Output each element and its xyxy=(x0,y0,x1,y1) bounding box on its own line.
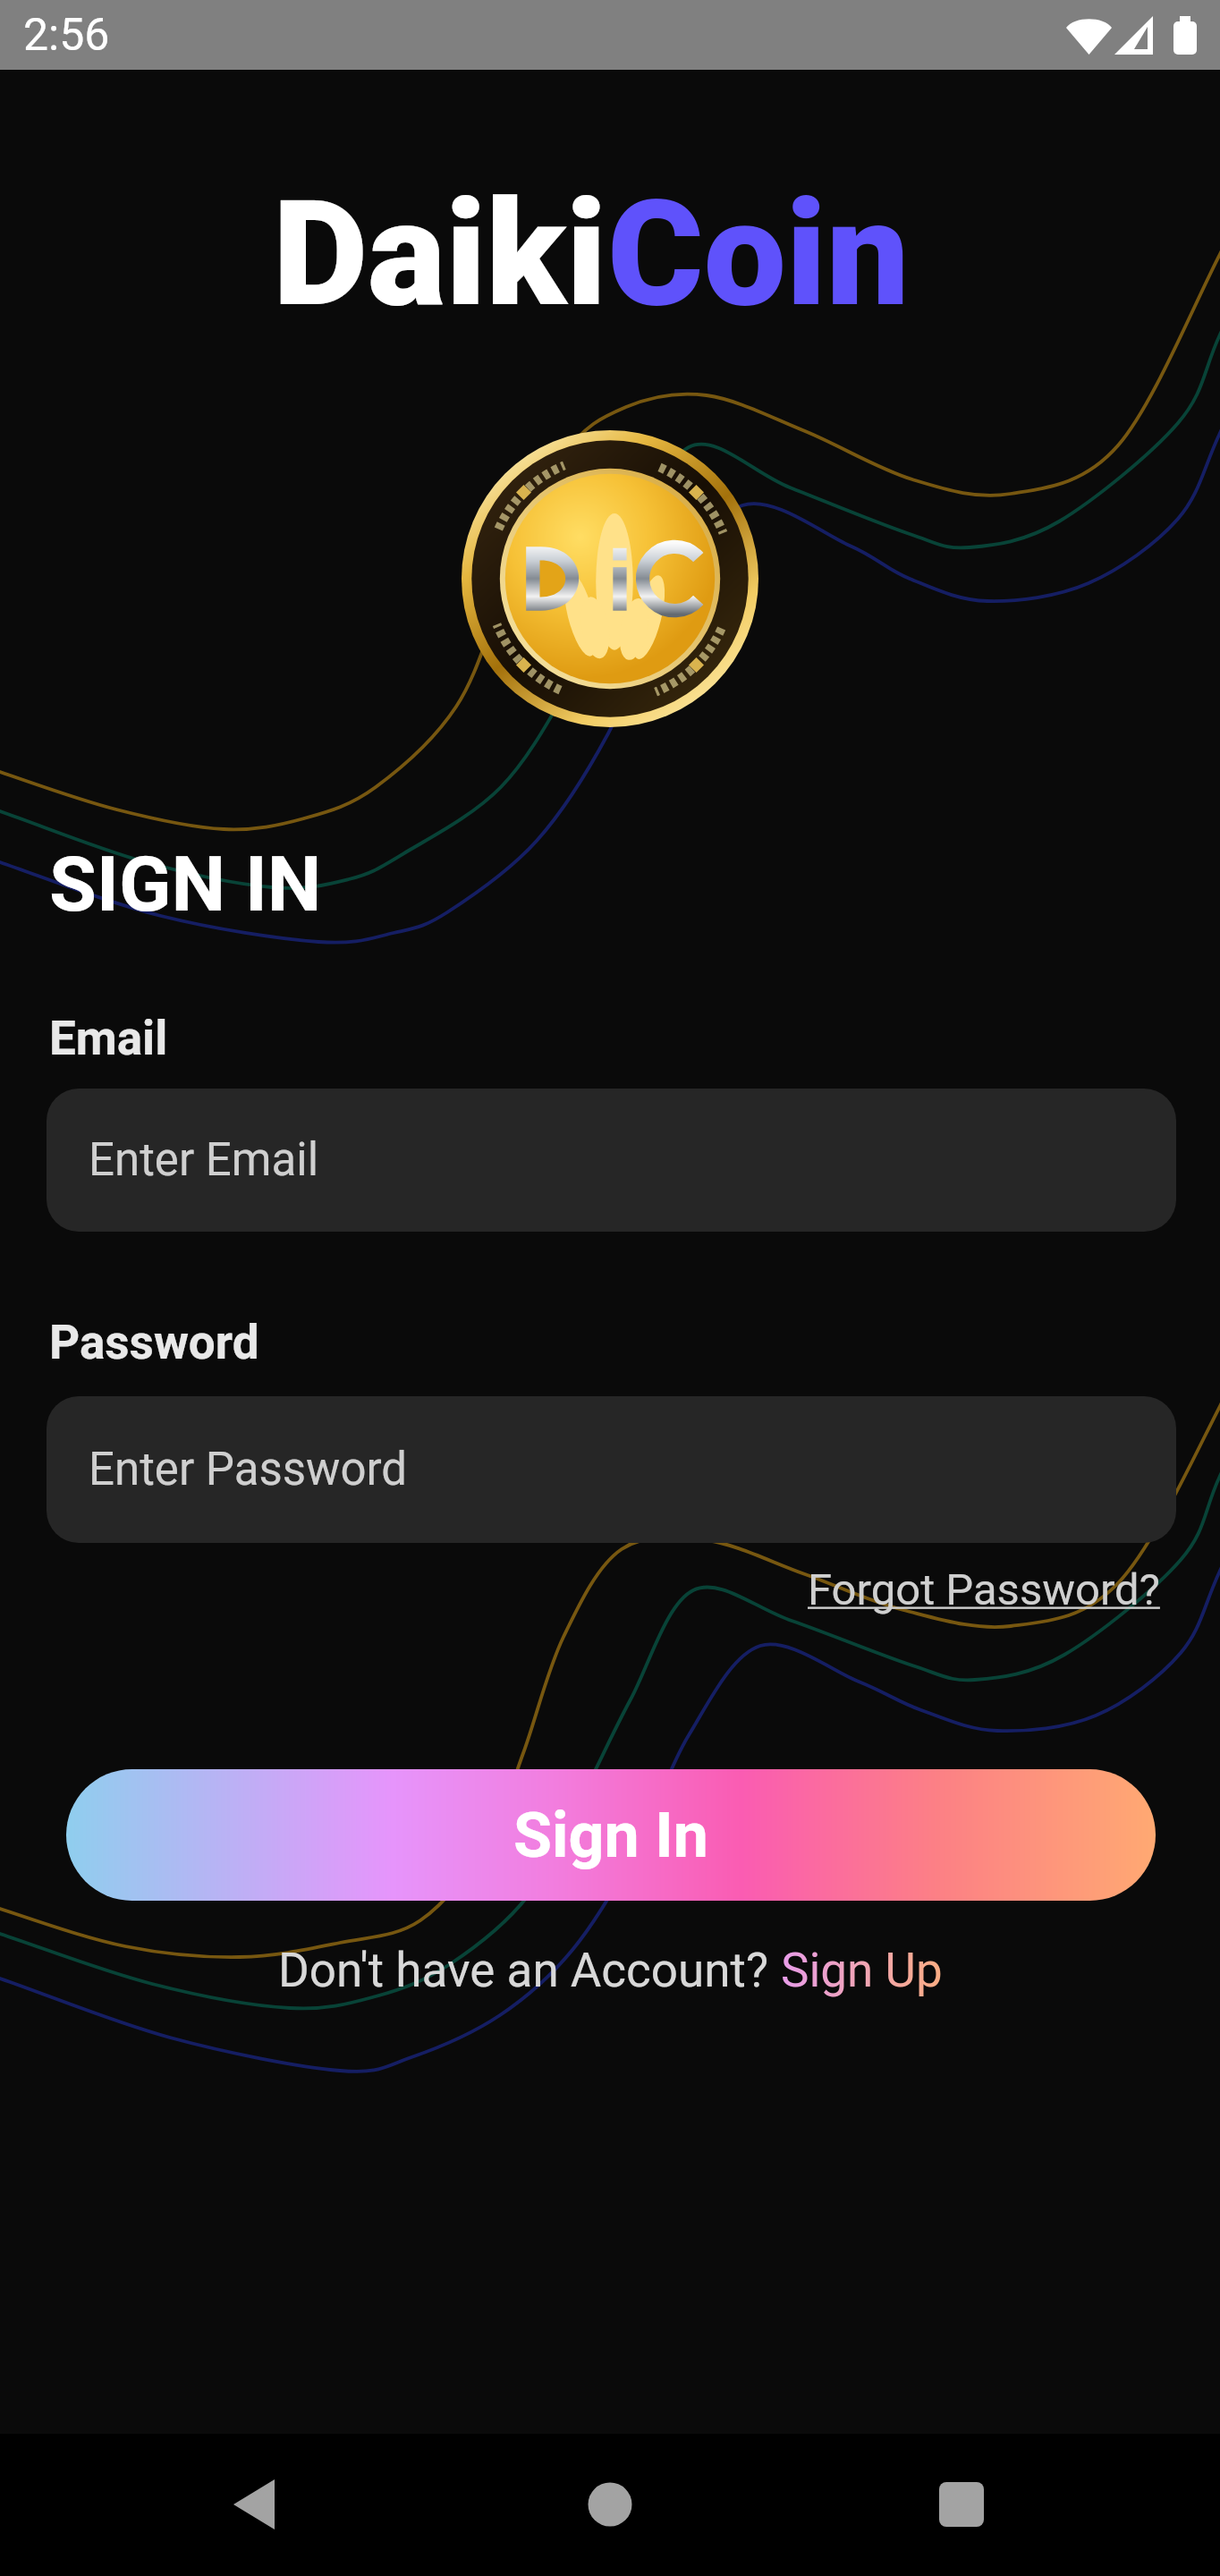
button[interactable]: Sign In xyxy=(66,1769,1156,1901)
staticText: Sign Up xyxy=(781,1943,943,1998)
staticText: Enter Password xyxy=(89,1443,408,1496)
button[interactable]: Back xyxy=(201,2451,309,2558)
staticText: Sign In xyxy=(513,1799,708,1872)
button[interactable]: Forgot Password? xyxy=(808,1564,1160,1615)
staticText: Email xyxy=(49,1011,168,1066)
staticText: Daiki xyxy=(273,168,607,340)
button[interactable]: Enter Password xyxy=(47,1396,1176,1543)
button[interactable]: Home xyxy=(556,2451,664,2558)
button[interactable]: Sign Up xyxy=(781,1943,943,1998)
staticText: Coin xyxy=(607,168,910,340)
staticText: 2:56 xyxy=(23,9,110,62)
staticText: Forgot Password? xyxy=(808,1564,1160,1615)
staticText: SIGN IN xyxy=(49,839,322,929)
button[interactable]: Enter Email xyxy=(47,1089,1176,1232)
button[interactable]: Recent apps xyxy=(908,2451,1015,2558)
staticText: Enter Email xyxy=(89,1133,319,1187)
staticText: Don't have an Account? xyxy=(278,1943,781,1998)
staticText: Password xyxy=(49,1315,259,1370)
